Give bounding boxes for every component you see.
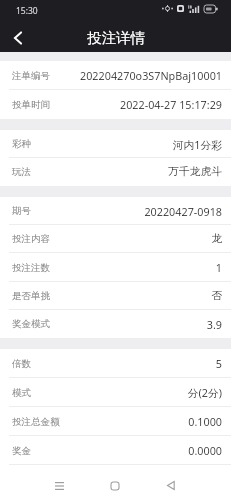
staticText: 注单编号 (12, 70, 50, 82)
staticText: 投注详情 (87, 29, 145, 47)
button[interactable]: 注单编号 (0, 61, 231, 90)
button[interactable]: 投注总金额 (0, 407, 231, 436)
staticText: 万千龙虎斗 (168, 165, 222, 179)
staticText: 15:30 (16, 5, 38, 17)
staticText: 玩法 (12, 166, 31, 178)
staticText: 202204270o3S7NpBaj10001 (80, 68, 222, 83)
staticText: 1 (215, 260, 222, 275)
staticText: 龙 (211, 232, 222, 246)
staticText: 分(2分) (187, 385, 222, 400)
button[interactable]: 投注内容 (0, 225, 231, 253)
staticText: 是否单挑 (12, 290, 50, 302)
staticText: 投注注数 (12, 262, 50, 274)
button[interactable]: Back (143, 471, 199, 500)
button[interactable]: Recent apps (32, 471, 87, 500)
staticText: 2022-04-27 15:17:29 (119, 97, 222, 112)
staticText: 投注内容 (12, 233, 50, 245)
button[interactable]: 投注注数 (0, 253, 231, 282)
staticText: 河内1分彩 (172, 137, 222, 152)
staticText: 0.0000 (188, 443, 222, 458)
button[interactable]: 是否单挑 (0, 282, 231, 310)
button[interactable]: 奖金模式 (0, 310, 231, 338)
button[interactable]: 奖金 (0, 436, 231, 465)
button[interactable]: 玩法 (0, 158, 231, 186)
staticText: 0.1000 (188, 414, 222, 429)
button[interactable]: 彩种 (0, 130, 231, 158)
staticText: 彩种 (12, 138, 31, 150)
staticText: 20220427-0918 (144, 204, 222, 219)
staticText: 3.9 (206, 317, 222, 332)
button[interactable]: 期号 (0, 197, 231, 225)
button[interactable]: 投单时间 (0, 90, 231, 119)
staticText: 期号 (12, 205, 31, 217)
staticText: 奖金模式 (12, 318, 50, 330)
staticText: 倍数 (12, 358, 31, 370)
button[interactable]: Back (0, 23, 36, 52)
button[interactable]: 倍数 (0, 349, 231, 378)
staticText: 投单时间 (12, 99, 50, 111)
button[interactable]: Home (87, 471, 143, 500)
staticText: 奖金 (12, 445, 31, 457)
button[interactable]: 模式 (0, 378, 231, 407)
staticText: 模式 (12, 387, 31, 399)
staticText: 5 (215, 356, 222, 371)
staticText: 否 (211, 289, 222, 303)
staticText: 投注总金额 (12, 416, 60, 428)
